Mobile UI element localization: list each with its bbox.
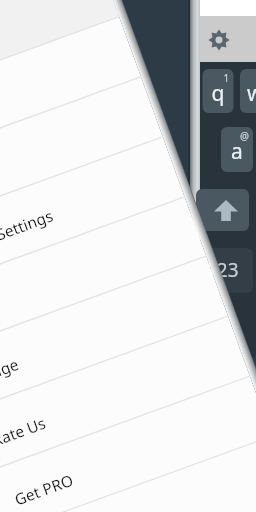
- button[interactable]: Keyboard app navigation drawer: [0, 0, 256, 512]
